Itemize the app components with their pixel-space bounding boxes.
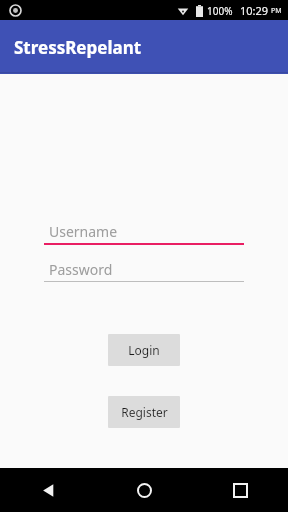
staticText: Password: [49, 260, 113, 279]
staticText: Username: [49, 222, 118, 241]
staticText: 10:29: [240, 3, 269, 18]
button[interactable]: Home: [96, 468, 192, 512]
button[interactable]: Login: [108, 334, 180, 366]
staticText: 100%: [207, 4, 233, 18]
button[interactable]: Password: [44, 257, 244, 282]
button[interactable]: Register: [108, 396, 180, 428]
button[interactable]: Back: [0, 468, 96, 512]
staticText: Login: [128, 342, 160, 358]
button[interactable]: Recent apps: [192, 468, 288, 512]
staticText: StressRepelant: [14, 36, 142, 59]
button[interactable]: Username: [44, 219, 244, 245]
staticText: Register: [121, 404, 168, 420]
staticText: PM: [271, 6, 282, 16]
